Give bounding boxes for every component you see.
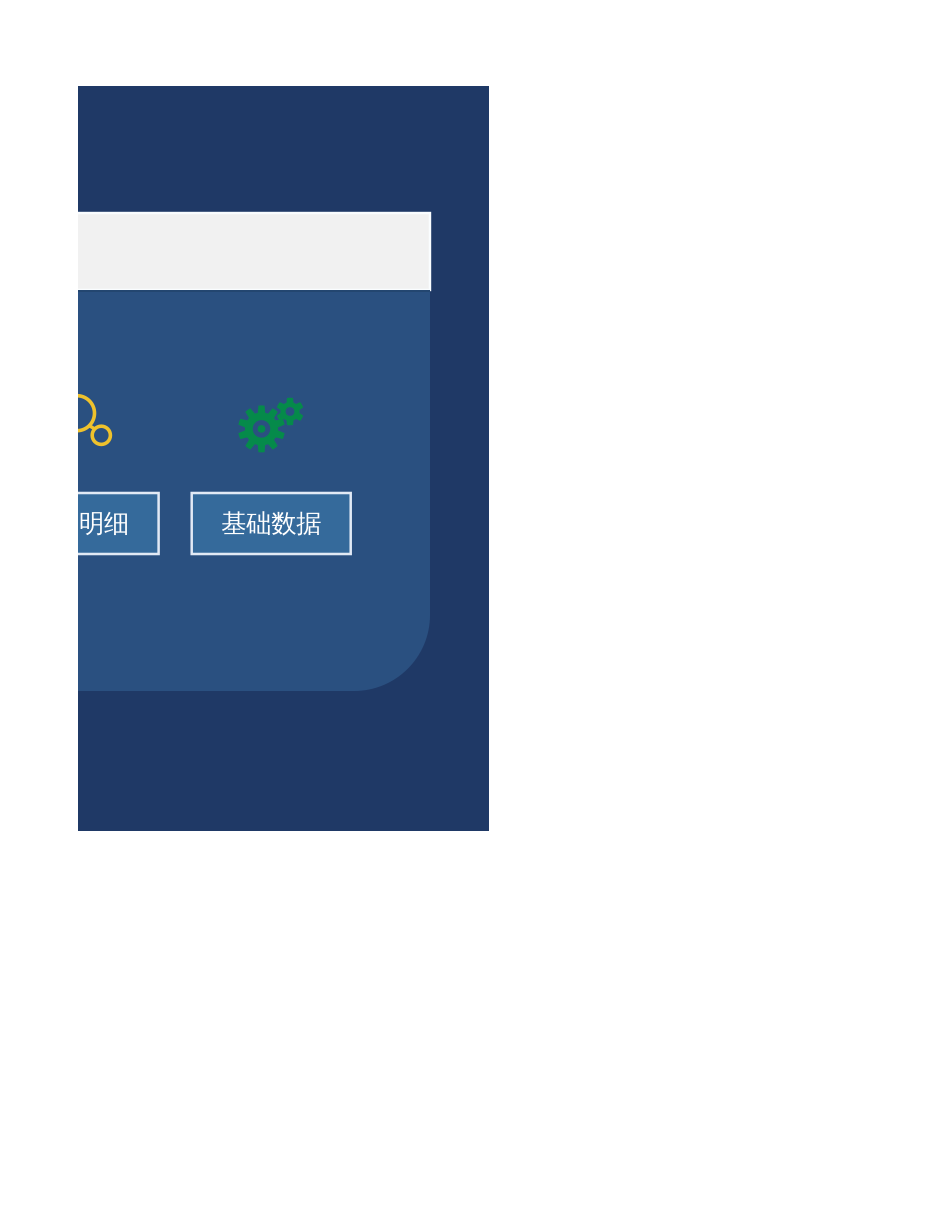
staticText: 基础数据 xyxy=(221,508,321,539)
staticText: 收支明细 xyxy=(29,508,129,539)
button[interactable]: 基础数据 xyxy=(192,493,351,554)
button[interactable]: 收支明细 xyxy=(0,493,159,554)
